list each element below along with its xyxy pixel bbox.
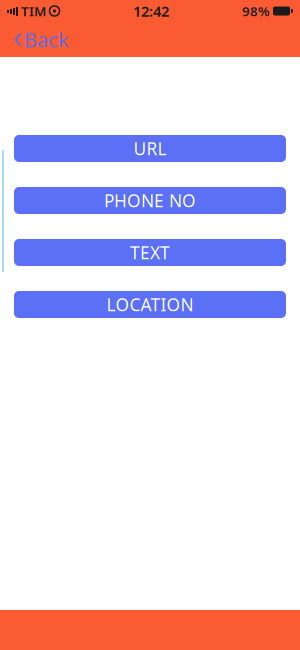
staticText: PHONE NO xyxy=(104,189,196,212)
button[interactable]: LOCATION xyxy=(14,291,286,318)
button[interactable]: URL xyxy=(14,135,286,162)
staticText: TEXT xyxy=(130,241,170,264)
button[interactable]: PHONE NO xyxy=(14,187,286,214)
staticText: 98% xyxy=(242,2,270,20)
staticText: Back xyxy=(24,26,69,53)
button[interactable]: TEXT xyxy=(14,239,286,266)
staticText: TIM xyxy=(21,2,46,20)
staticText: LOCATION xyxy=(106,293,193,316)
staticText: 12:42 xyxy=(133,1,169,21)
button[interactable]: Back xyxy=(4,20,79,59)
staticText: URL xyxy=(133,137,166,160)
